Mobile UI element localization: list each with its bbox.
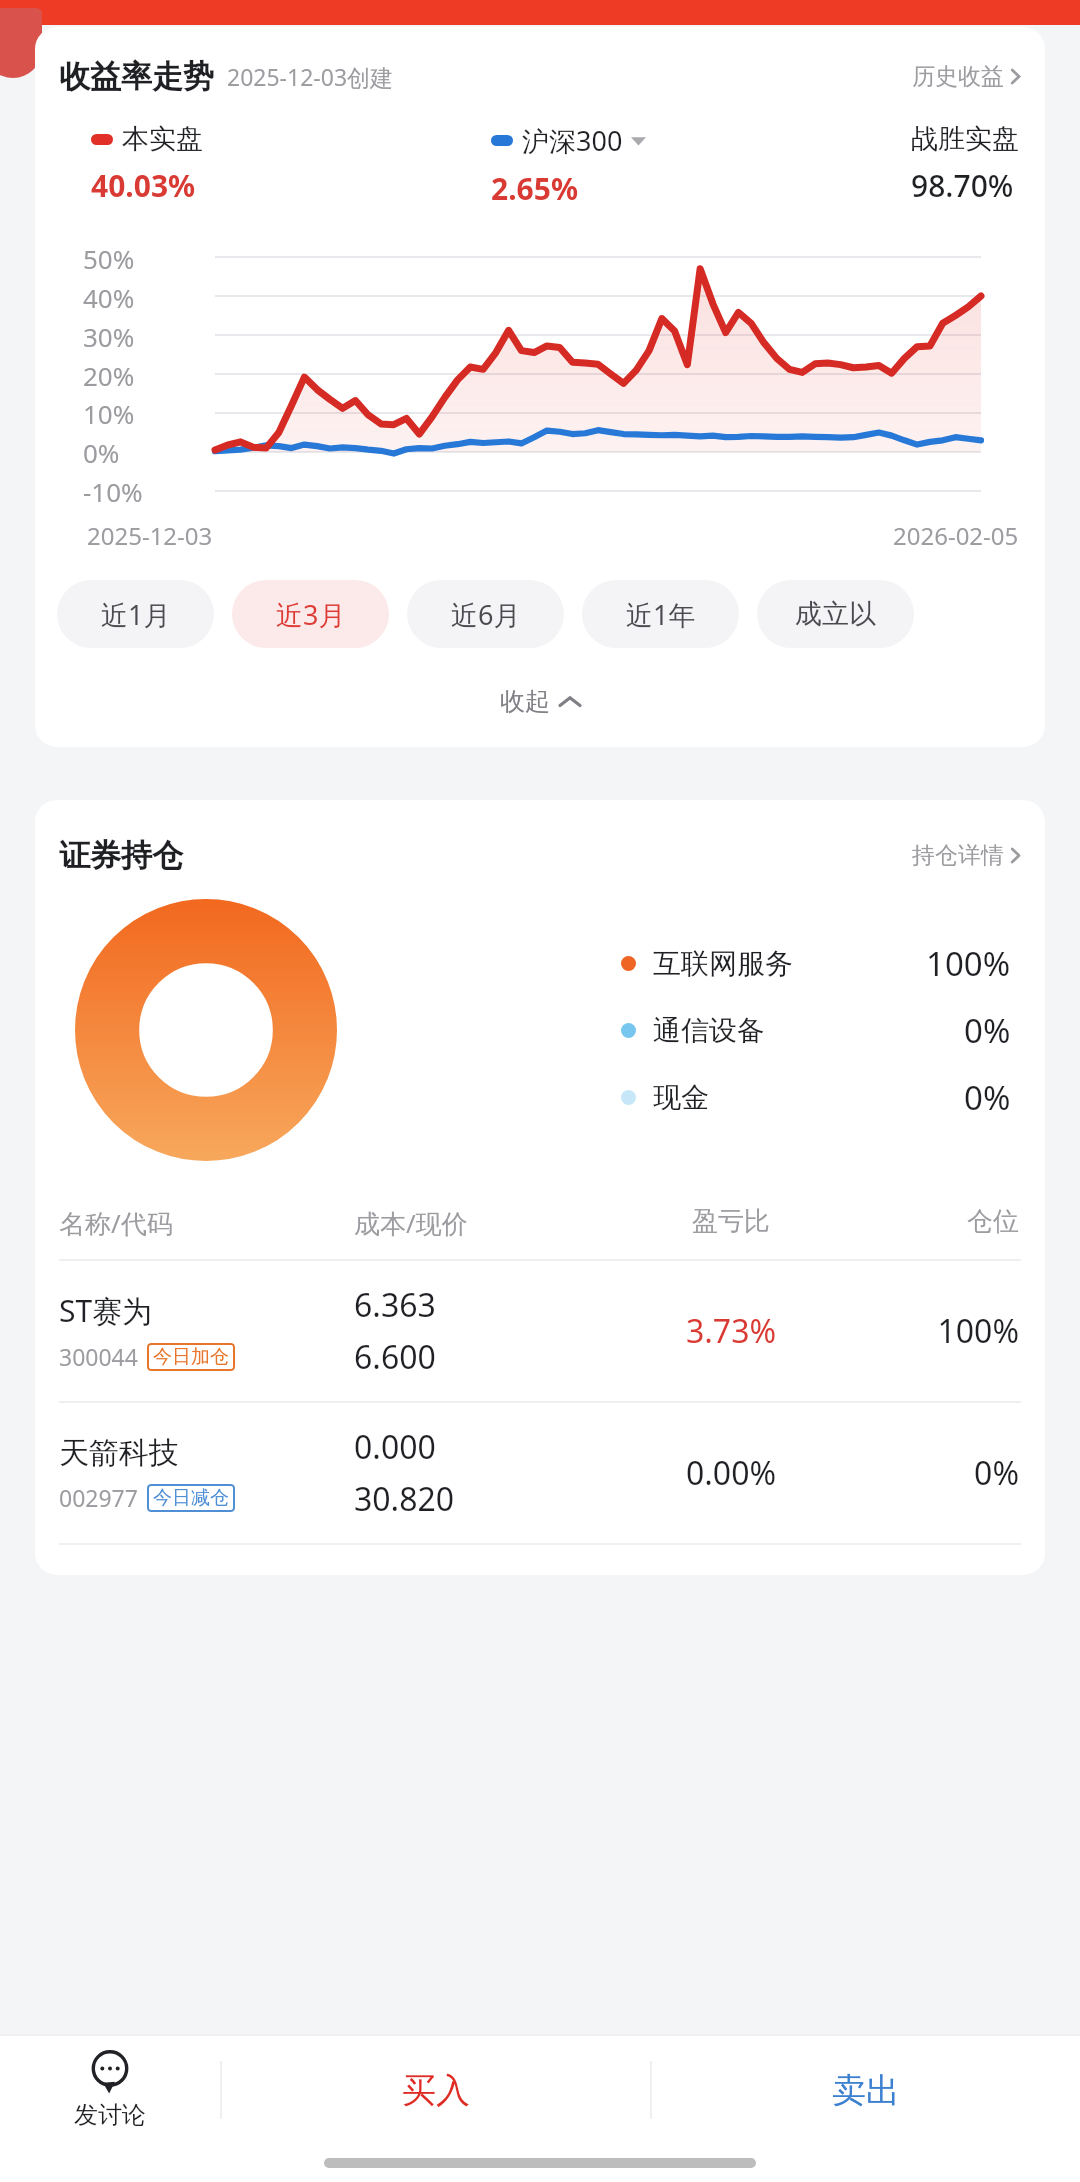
staticText: 近3月 — [276, 596, 346, 633]
staticText: 20% — [83, 358, 135, 393]
staticText: 100% — [849, 1309, 1019, 1353]
staticText: 互联网服务 — [653, 946, 793, 981]
staticText: 50% — [83, 241, 135, 276]
button[interactable]: 近3月 — [232, 580, 389, 648]
staticText: 近6月 — [451, 596, 521, 633]
staticText: 10% — [83, 396, 135, 431]
button[interactable]: 买入 — [222, 2036, 650, 2144]
button[interactable]: 成立以 — [757, 580, 914, 648]
button[interactable]: 收起 — [35, 678, 1045, 725]
staticText: 30.820 — [354, 1477, 455, 1521]
staticText: 2025-12-03创建 — [227, 61, 394, 92]
staticText: 3.73% — [613, 1309, 849, 1353]
staticText: 持仓详情 — [912, 841, 1004, 870]
staticText: 0% — [964, 1075, 1011, 1120]
staticText: 仓位 — [849, 1205, 1019, 1238]
staticText: 近1年 — [626, 596, 696, 633]
button[interactable]: 近6月 — [407, 580, 564, 648]
staticText: 近1月 — [101, 596, 171, 633]
staticText: 98.70% — [911, 165, 1014, 206]
staticText: 今日加仓 — [153, 1345, 229, 1369]
staticText: 2.65% — [491, 168, 578, 209]
staticText: 6.600 — [354, 1335, 436, 1379]
staticText: 0% — [964, 1008, 1011, 1053]
staticText: 发讨论 — [74, 2100, 146, 2130]
staticText: 天箭科技 — [59, 1434, 179, 1472]
staticText: -10% — [83, 474, 143, 509]
staticText: 历史收益 — [912, 62, 1004, 91]
staticText: 30% — [83, 319, 135, 354]
staticText: 收益率走势 — [59, 57, 214, 96]
staticText: 卖出 — [832, 2069, 900, 2112]
staticText: 002977 — [59, 1482, 138, 1513]
button[interactable]: 卖出 — [652, 2036, 1080, 2144]
staticText: 40% — [83, 280, 135, 315]
staticText: 本实盘 — [122, 122, 203, 156]
staticText: 名称/代码 — [59, 1205, 354, 1241]
staticText: 成本/现价 — [354, 1205, 613, 1241]
staticText: 300044 — [59, 1341, 138, 1372]
staticText: 战胜实盘 — [911, 122, 1019, 156]
staticText: 沪深300 — [522, 122, 623, 159]
staticText: 今日减仓 — [153, 1486, 229, 1510]
staticText: 0.000 — [354, 1425, 436, 1469]
staticText: 通信设备 — [653, 1013, 765, 1048]
staticText: ST赛为 — [59, 1290, 153, 1331]
button[interactable]: 持仓详情 — [908, 837, 1025, 874]
staticText: 40.03% — [91, 165, 196, 206]
staticText: 0.00% — [613, 1451, 849, 1495]
button[interactable]: 天箭科技 — [35, 1403, 1045, 1543]
staticText: 2026-02-05 — [893, 519, 1019, 552]
button[interactable]: 近1年 — [582, 580, 739, 648]
staticText: 2025-12-03 — [87, 519, 213, 552]
staticText: 100% — [926, 941, 1011, 986]
staticText: 收起 — [500, 686, 550, 717]
staticText: 0% — [83, 435, 120, 470]
button[interactable]: ST赛为 — [35, 1261, 1045, 1401]
button[interactable]: 历史收益 — [908, 58, 1025, 95]
staticText: 6.363 — [354, 1283, 436, 1327]
staticText: 现金 — [653, 1080, 709, 1115]
button[interactable]: 发讨论 — [0, 2036, 220, 2144]
staticText: 0% — [849, 1451, 1019, 1495]
staticText: 证券持仓 — [59, 836, 183, 875]
staticText: 买入 — [402, 2069, 470, 2112]
button[interactable]: 近1月 — [57, 580, 214, 648]
staticText: 成立以 — [795, 597, 876, 631]
staticText: 盈亏比 — [613, 1205, 849, 1238]
button[interactable]: 沪深300 — [491, 122, 646, 159]
